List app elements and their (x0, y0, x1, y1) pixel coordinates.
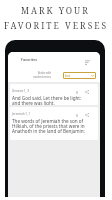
staticText: Favorites (21, 57, 38, 62)
staticText: 0 (76, 90, 78, 95)
staticText: The words of Jeremiah the son of Hilkiah… (12, 118, 85, 134)
button[interactable]: Jeremiah 1, 1 (10, 107, 98, 140)
staticText: FAVORITE VERSES (4, 20, 109, 32)
staticText: Books with (37, 71, 51, 75)
button[interactable]: Genesis 1, 3 (10, 84, 98, 105)
button[interactable]: Share (84, 112, 90, 118)
staticText: 0 (76, 113, 78, 118)
button[interactable]: Share (84, 89, 90, 95)
staticText: Jeremiah 1, 1 (12, 112, 31, 116)
button[interactable]: Sort (81, 56, 93, 68)
button[interactable]: List (63, 72, 96, 79)
staticText: marked verses (33, 75, 51, 79)
staticText: MARK YOUR (21, 5, 90, 17)
staticText: Genesis 1, 3 (12, 89, 29, 93)
staticText: List (65, 74, 70, 78)
staticText: And God said, Let there be light: and th… (12, 95, 82, 105)
